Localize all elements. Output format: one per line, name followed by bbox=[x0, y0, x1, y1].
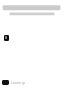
button[interactable]: Open item bbox=[4, 35, 9, 41]
button[interactable]: Action bbox=[2, 80, 9, 85]
staticText: Lorem ip bbox=[11, 80, 26, 85]
